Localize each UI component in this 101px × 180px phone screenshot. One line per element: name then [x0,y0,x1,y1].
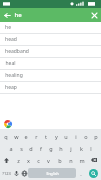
button[interactable]: q [0,130,11,142]
staticText: headband [5,48,29,55]
button[interactable]: Backspace [87,154,101,166]
button[interactable]: English [28,168,76,178]
staticText: u [64,133,68,140]
button[interactable]: w [11,130,21,142]
button[interactable]: y [51,130,61,142]
staticText: p [94,133,98,140]
button[interactable]: n [65,154,76,166]
button[interactable]: a [5,142,16,154]
button[interactable]: Voice input [12,166,20,180]
staticText: . [80,170,82,177]
staticText: t [45,133,47,140]
staticText: a [9,145,13,152]
button[interactable]: he [14,8,87,22]
staticText: b [58,157,62,164]
staticText: d [29,145,33,152]
button[interactable]: j [66,142,76,154]
button[interactable]: head [0,34,101,46]
staticText: r [35,133,38,140]
button[interactable]: p [91,130,101,142]
staticText: ?123 [2,171,11,176]
button[interactable]: d [26,142,36,154]
button[interactable]: i [71,130,81,142]
button[interactable]: Search [86,166,100,180]
staticText: heal [5,60,16,67]
staticText: v [47,157,50,164]
staticText: n [69,157,73,164]
staticText: g [49,145,53,152]
staticText: k [80,145,83,152]
button[interactable]: headband [0,46,101,58]
button[interactable]: b [54,154,65,166]
button[interactable]: c [33,154,43,166]
staticText: he [14,11,22,19]
button[interactable]: m [76,154,87,166]
staticText: he [5,24,11,31]
staticText: English [46,171,59,176]
button[interactable]: r [31,130,41,142]
button[interactable]: s [16,142,26,154]
button[interactable]: o [81,130,91,142]
staticText: f [40,145,42,152]
button[interactable]: x [23,154,33,166]
staticText: o [84,133,88,140]
staticText: heap [5,84,17,91]
staticText: head [5,36,17,43]
staticText: l [90,145,92,152]
staticText: i [75,133,77,140]
button[interactable]: Change language [20,166,28,180]
button[interactable]: Shift [0,154,13,166]
button[interactable]: v [43,154,54,166]
staticText: y [55,133,58,140]
button[interactable]: Google [3,119,13,129]
staticText: j [70,145,72,152]
staticText: c [37,157,40,164]
button[interactable]: f [36,142,46,154]
button[interactable]: k [76,142,86,154]
button[interactable]: Clear [87,8,101,22]
staticText: h [59,145,63,152]
button[interactable]: u [61,130,71,142]
staticText: e [24,133,28,140]
button[interactable]: t [41,130,51,142]
staticText: w [14,133,19,140]
staticText: m [79,157,85,164]
button[interactable]: l [86,142,96,154]
button[interactable]: h [56,142,66,154]
button[interactable]: heal [0,58,101,70]
staticText: x [27,157,30,164]
staticText: healing [5,72,23,79]
button[interactable]: ?123 [1,166,12,180]
button[interactable]: Back [0,8,14,22]
button[interactable]: g [46,142,56,154]
button[interactable]: healing [0,70,101,82]
button[interactable]: e [21,130,31,142]
staticText: s [20,145,23,152]
staticText: z [17,157,20,164]
button[interactable]: z [13,154,23,166]
staticText: q [4,133,8,140]
button[interactable]: heap [0,82,101,94]
button[interactable]: he [0,22,101,34]
